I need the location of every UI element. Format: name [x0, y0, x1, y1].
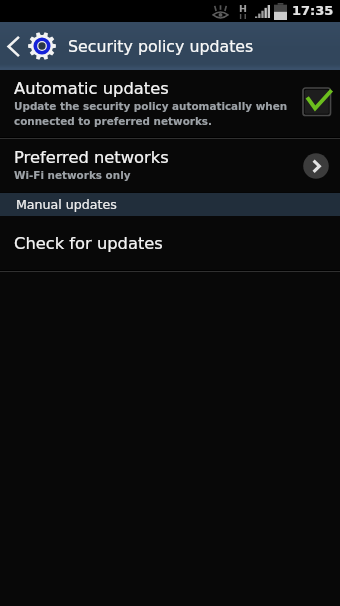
other: Smart stay [212, 5, 229, 20]
staticText: Preferred networks [14, 148, 169, 167]
staticText: Automatic updates [14, 79, 169, 98]
staticText: Wi-Fi networks only [14, 169, 131, 181]
button[interactable]: Preferred networks [0, 139, 340, 193]
staticText: Manual updates [16, 197, 117, 212]
staticText: Check for updates [14, 234, 163, 253]
other: Signal strength [255, 5, 270, 18]
other: Battery [274, 3, 287, 20]
button[interactable]: Automatic updates [0, 70, 340, 138]
button[interactable]: Check for updates [0, 216, 340, 271]
staticText: Update the security policy automatically… [14, 100, 288, 127]
button[interactable]: Navigate up [0, 22, 58, 70]
other: Navigate up [7, 36, 20, 57]
staticText: 17:35 [292, 3, 334, 18]
other: Open preferred networks [300, 150, 332, 182]
staticText: Security policy updates [68, 37, 254, 55]
staticText: H [239, 3, 247, 14]
